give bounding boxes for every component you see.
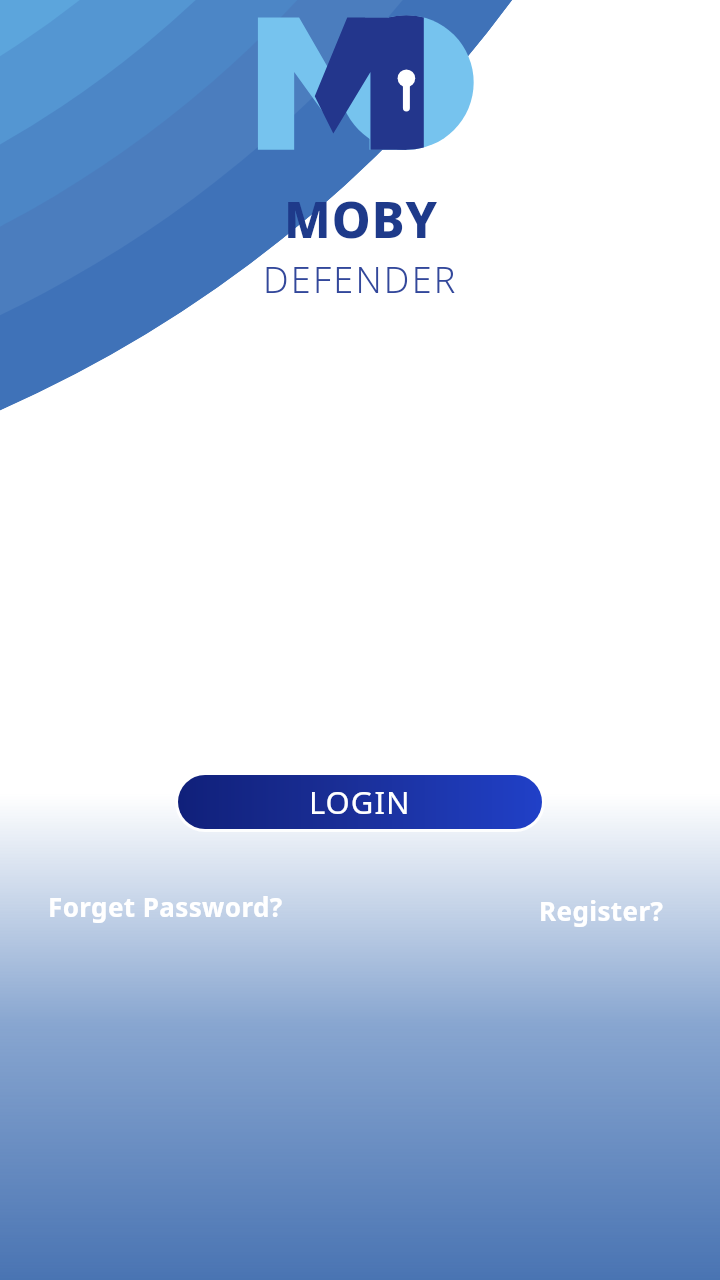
staticText: MOBY <box>284 186 438 253</box>
staticText: DEFENDER <box>263 255 458 304</box>
button[interactable]: Forget Password? <box>40 885 291 928</box>
staticText: LOGIN <box>309 781 411 823</box>
staticText: Forget Password? <box>48 889 283 924</box>
staticText: Register? <box>539 893 664 928</box>
button[interactable]: Register? <box>531 889 672 932</box>
button[interactable]: LOGIN <box>178 775 542 829</box>
